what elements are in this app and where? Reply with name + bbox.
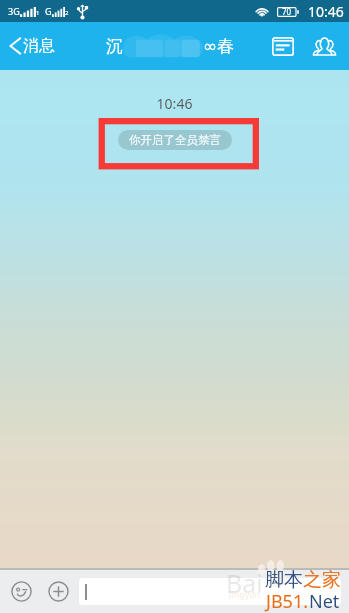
- staticText: 2: [65, 9, 69, 17]
- staticText: 你开启了全员禁言: [129, 133, 221, 147]
- staticText: ∞春: [203, 36, 235, 57]
- button[interactable]: [79, 578, 341, 605]
- staticText: 脚本: [265, 568, 303, 592]
- staticText: 沉: [106, 36, 123, 57]
- staticText: 消息: [23, 36, 55, 56]
- staticText: Net: [309, 589, 340, 613]
- staticText: JB51.: [266, 589, 309, 613]
- button[interactable]: Group members: [303, 22, 345, 70]
- staticText: Jingyan: [229, 588, 261, 600]
- button[interactable]: Emoji: [4, 574, 39, 609]
- staticText: 10:46: [308, 2, 344, 21]
- staticText: 3G: [8, 5, 20, 17]
- button[interactable]: Chat records: [263, 22, 303, 70]
- staticText: Bai: [226, 566, 263, 600]
- staticText: 10:46: [0, 94, 349, 113]
- staticText: 1: [36, 9, 40, 17]
- button[interactable]: 你开启了全员禁言: [118, 130, 232, 150]
- button[interactable]: More options: [41, 574, 76, 609]
- staticText: 之家: [303, 568, 341, 592]
- staticText: 70: [282, 6, 292, 17]
- staticText: G: [45, 5, 52, 17]
- button[interactable]: 消息: [0, 22, 63, 70]
